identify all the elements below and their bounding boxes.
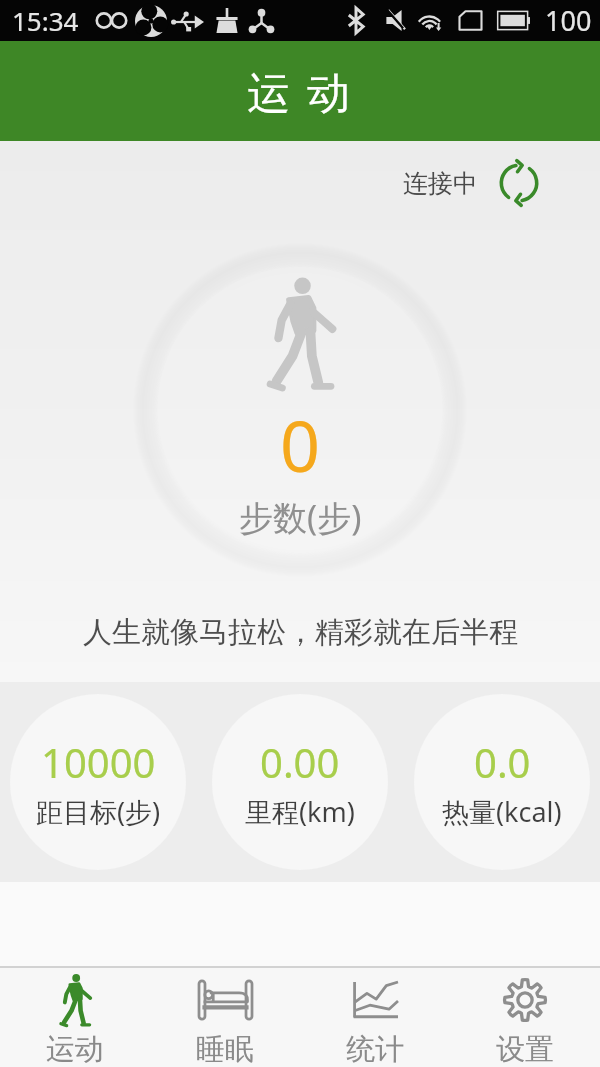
button[interactable]: 0.0: [414, 694, 590, 870]
button[interactable]: 0.00: [212, 694, 388, 870]
staticText: 热量(kcal): [442, 793, 562, 830]
staticText: 统计: [346, 1031, 404, 1067]
staticText: 运 动: [247, 62, 354, 121]
staticText: 设置: [496, 1031, 554, 1067]
button[interactable]: 睡眠: [150, 968, 300, 1067]
button[interactable]: 10000: [10, 694, 186, 870]
staticText: 距目标(步): [36, 793, 161, 830]
staticText: 15:34: [12, 3, 79, 38]
staticText: 步数(步): [239, 494, 362, 540]
staticText: 人生就像马拉松，精彩就在后半程: [83, 614, 518, 651]
button[interactable]: 运动: [0, 968, 150, 1067]
staticText: 0.00: [260, 735, 340, 789]
staticText: 100: [545, 2, 592, 39]
staticText: 运动: [46, 1031, 104, 1067]
staticText: 10000: [41, 735, 156, 789]
staticText: 里程(km): [245, 793, 355, 830]
staticText: 0: [280, 397, 321, 492]
staticText: 睡眠: [196, 1031, 254, 1067]
button[interactable]: Sync: [496, 160, 542, 206]
button[interactable]: 统计: [300, 968, 450, 1067]
button[interactable]: 设置: [450, 968, 600, 1067]
staticText: 0.0: [474, 735, 531, 789]
staticText: 连接中: [403, 168, 478, 199]
